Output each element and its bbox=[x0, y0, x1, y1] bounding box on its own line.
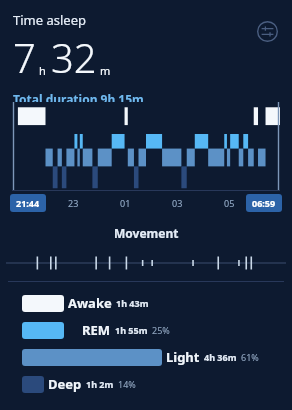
staticText: REM bbox=[82, 321, 111, 339]
staticText: 61% bbox=[241, 351, 259, 363]
button[interactable]: 21:44 bbox=[10, 194, 46, 212]
staticText: 21:44 bbox=[16, 197, 40, 209]
staticText: Awake bbox=[68, 294, 112, 312]
staticText: 1h 2m bbox=[86, 378, 114, 390]
staticText: 1h 43m bbox=[116, 297, 149, 309]
button[interactable]: Sleep settings bbox=[253, 17, 281, 45]
staticText: 25% bbox=[152, 324, 170, 336]
staticText: 05 bbox=[224, 197, 235, 209]
staticText: 32 bbox=[51, 30, 97, 84]
button[interactable]: Awake bbox=[22, 294, 292, 312]
staticText: 03 bbox=[172, 197, 183, 209]
staticText: 06:59 bbox=[252, 197, 276, 209]
staticText: h bbox=[39, 63, 46, 78]
staticText: Deep bbox=[48, 375, 82, 393]
staticText: 01 bbox=[120, 197, 131, 209]
staticText: Movement bbox=[114, 225, 179, 241]
staticText: 7 bbox=[13, 30, 36, 84]
staticText: Light bbox=[166, 348, 200, 366]
staticText: Time asleep bbox=[13, 11, 86, 29]
staticText: 23 bbox=[68, 197, 79, 209]
staticText: 1h 55m bbox=[115, 324, 148, 336]
button[interactable]: REM bbox=[22, 321, 292, 339]
staticText: m bbox=[100, 63, 111, 78]
button[interactable]: Light bbox=[22, 348, 292, 366]
staticText: Total duration 9h 15m bbox=[13, 91, 144, 102]
button[interactable]: 06:59 bbox=[246, 194, 282, 212]
button[interactable]: Deep bbox=[22, 375, 292, 393]
staticText: 14% bbox=[118, 378, 136, 390]
staticText: 4h 36m bbox=[204, 351, 237, 363]
